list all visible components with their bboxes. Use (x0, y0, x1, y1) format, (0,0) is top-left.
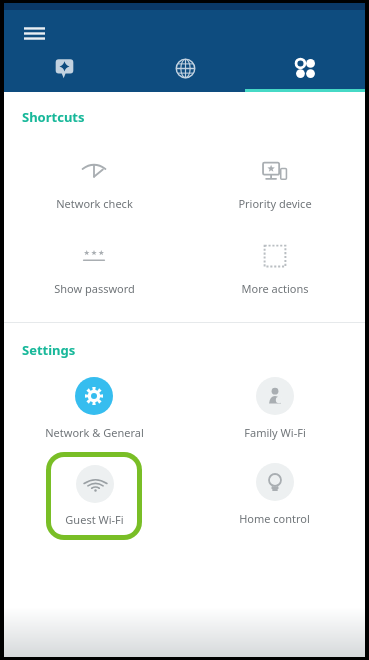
button[interactable]: Network (125, 50, 245, 92)
staticText: Settings (22, 341, 76, 359)
button[interactable]: Family Wi-Fi (184, 373, 365, 444)
staticText: Network & General (45, 425, 144, 440)
staticText: Priority device (238, 196, 312, 211)
button[interactable]: Network & General (4, 373, 184, 444)
staticText: Family Wi-Fi (244, 425, 306, 440)
button[interactable]: Home control (239, 459, 310, 530)
staticText: Guest Wi-Fi (65, 512, 124, 527)
button[interactable]: Guest Wi-Fi (51, 457, 137, 535)
button[interactable]: Network check (4, 154, 184, 215)
staticText: More actions (241, 281, 309, 296)
staticText: Shortcuts (22, 108, 85, 126)
staticText: Network check (56, 196, 133, 211)
button[interactable]: Apps (245, 50, 365, 92)
staticText: Home control (239, 511, 310, 526)
button[interactable]: Priority device (184, 154, 365, 215)
button[interactable]: Messages (4, 50, 125, 92)
button[interactable]: Menu (18, 17, 50, 49)
button[interactable]: Show password (4, 239, 184, 300)
button[interactable]: More actions (184, 239, 365, 300)
staticText: Show password (54, 281, 135, 296)
